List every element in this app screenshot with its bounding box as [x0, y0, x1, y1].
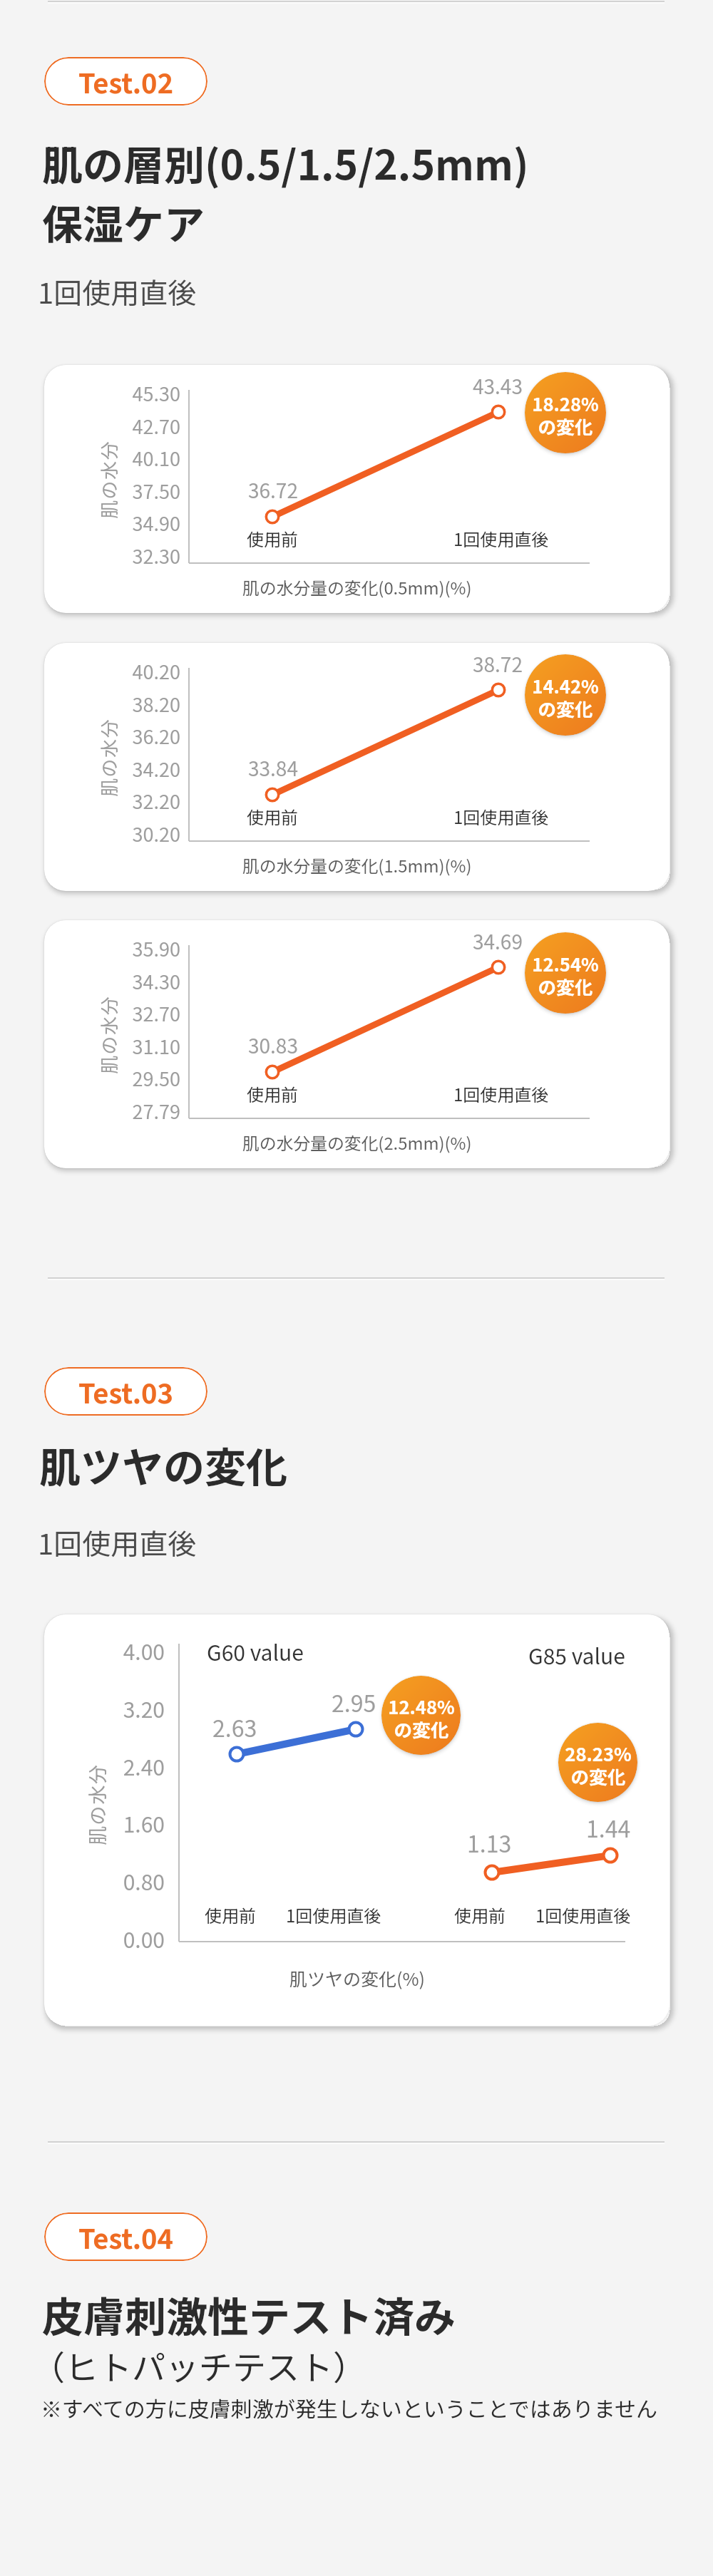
staticText: 32.30	[130, 542, 180, 570]
staticText: 使用前	[454, 1902, 506, 1927]
staticText: 肌の水分	[95, 718, 119, 797]
staticText: 使用前	[247, 1081, 298, 1106]
staticText: 肌ツヤの変化(%)	[289, 1965, 425, 1991]
button[interactable]: 35.90	[44, 920, 670, 1168]
staticText: 皮膚刺激性テスト済み	[42, 2284, 456, 2344]
staticText: 使用前	[205, 1902, 256, 1927]
other: 変化率 12.54%	[525, 932, 606, 1014]
staticText: ※すべての方に皮膚刺激が発生しないということではありません	[41, 2392, 657, 2423]
staticText: 肌の水分	[95, 440, 119, 519]
staticText: 36.72	[248, 475, 298, 505]
staticText: G85 value	[528, 1639, 625, 1670]
staticText: 2.40	[110, 1751, 165, 1781]
staticText: 31.10	[130, 1032, 180, 1060]
staticText: 36.20	[130, 722, 180, 750]
staticText: 14.42% の変化	[532, 672, 599, 722]
staticText: 34.30	[130, 967, 180, 995]
staticText: 1回使用直後	[38, 1522, 197, 1563]
staticText: 肌の水分	[83, 1763, 108, 1845]
staticText: Test.04	[78, 2217, 173, 2257]
staticText: 32.20	[130, 787, 180, 815]
staticText: 肌ツヤの変化	[39, 1435, 288, 1495]
staticText: 34.69	[473, 927, 523, 956]
staticText: 肌の水分	[95, 995, 119, 1074]
staticText: 1回使用直後	[286, 1902, 381, 1927]
staticText: 12.48% の変化	[388, 1693, 455, 1743]
staticText: 肌の水分量の変化(2.5mm)(%)	[242, 1130, 472, 1154]
button[interactable]: Test.02	[44, 57, 207, 105]
other: 変化率 12.48%	[381, 1676, 461, 1755]
staticText: 4.00	[110, 1635, 165, 1666]
other: 変化率 28.23%	[558, 1723, 637, 1802]
staticText: 1回使用直後	[453, 526, 549, 551]
staticText: 34.90	[130, 509, 180, 537]
staticText: Test.02	[78, 62, 173, 101]
staticText: 27.79	[130, 1097, 180, 1125]
staticText: 使用前	[247, 526, 298, 551]
other: 変化率 14.42%	[525, 654, 606, 736]
button[interactable]: 40.20	[44, 643, 670, 891]
staticText: 33.84	[248, 753, 298, 783]
staticText: 29.50	[130, 1064, 180, 1092]
staticText: 0.00	[110, 1923, 165, 1954]
staticText: 43.43	[473, 371, 523, 401]
staticText: 肌の水分量の変化(1.5mm)(%)	[242, 852, 472, 877]
button[interactable]: 45.30	[44, 365, 670, 613]
staticText: 1.60	[110, 1808, 165, 1838]
staticText: 30.20	[130, 820, 180, 847]
staticText: G60 value	[207, 1636, 304, 1666]
button[interactable]: 4.00	[44, 1614, 670, 2026]
staticText: 1回使用直後	[453, 804, 549, 829]
staticText: 30.83	[248, 1031, 298, 1060]
button[interactable]: Test.03	[44, 1367, 207, 1416]
button[interactable]: Test.04	[44, 2212, 207, 2261]
staticText: Test.03	[78, 1372, 173, 1411]
staticText: 32.70	[130, 999, 180, 1027]
staticText: 42.70	[130, 412, 180, 440]
staticText: 1回使用直後	[453, 1081, 549, 1106]
staticText: 0.80	[110, 1865, 165, 1896]
staticText: 3.20	[110, 1693, 165, 1724]
staticText: 1.44	[586, 1811, 631, 1844]
staticText: 35.90	[130, 934, 180, 962]
staticText: 38.72	[473, 649, 523, 679]
staticText: 1回使用直後	[38, 271, 197, 312]
staticText: 40.20	[130, 657, 180, 685]
staticText: 2.95	[332, 1686, 376, 1719]
staticText: 28.23% の変化	[565, 1740, 632, 1790]
staticText: 45.30	[130, 379, 180, 407]
staticText: 38.20	[130, 690, 180, 718]
staticText: 1.13	[467, 1826, 512, 1859]
staticText: 40.10	[130, 444, 180, 472]
staticText: 1回使用直後	[535, 1902, 631, 1927]
staticText: 34.20	[130, 755, 180, 783]
staticText: 18.28% の変化	[532, 390, 599, 440]
staticText: 37.50	[130, 477, 180, 505]
other: 変化率 18.28%	[525, 372, 606, 453]
staticText: 12.54% の変化	[532, 950, 599, 1000]
staticText: （ヒトパッチテスト）	[31, 2341, 366, 2389]
staticText: 肌の層別(0.5/1.5/2.5mm) 保湿ケア	[42, 133, 529, 252]
staticText: 2.63	[212, 1711, 257, 1743]
staticText: 肌の水分量の変化(0.5mm)(%)	[242, 575, 472, 599]
staticText: 使用前	[247, 804, 298, 829]
